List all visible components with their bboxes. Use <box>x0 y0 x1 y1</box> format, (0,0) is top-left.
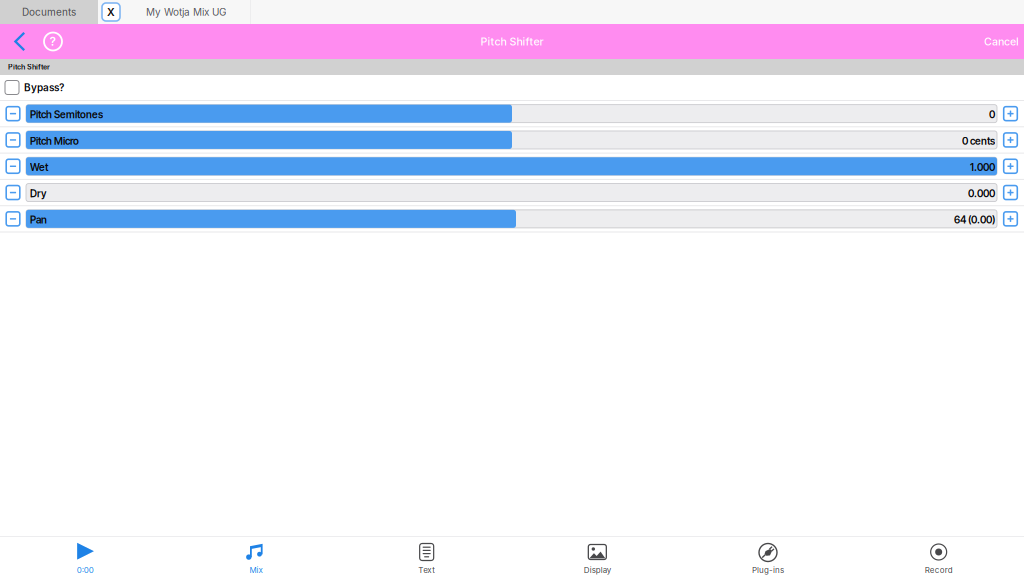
button[interactable]: Decrease Dry <box>0 180 26 205</box>
button[interactable]: Decrease Pan <box>0 206 26 231</box>
button[interactable]: Pan <box>26 206 997 231</box>
button[interactable]: Decrease Pitch Semitones <box>0 101 26 126</box>
button[interactable]: Decrease Pitch Micro <box>0 127 26 153</box>
staticText: Plug-ins <box>752 565 784 575</box>
staticText: My Wotja Mix UG <box>146 6 226 18</box>
button[interactable]: Increase Pitch Semitones <box>997 101 1024 126</box>
button[interactable]: Back <box>7 26 35 57</box>
button[interactable]: Mix <box>171 537 341 576</box>
staticText: X <box>107 5 115 18</box>
button[interactable]: Documents <box>0 0 98 24</box>
staticText: Documents <box>22 6 76 18</box>
button[interactable]: Wet <box>26 154 997 179</box>
button[interactable]: Text <box>341 537 512 576</box>
button[interactable]: Increase Pan <box>997 206 1024 231</box>
button[interactable]: 0:00 <box>0 537 171 576</box>
staticText: Pitch Micro <box>30 135 79 147</box>
button[interactable]: Help <box>35 26 69 57</box>
staticText: Bypass? <box>24 81 64 94</box>
staticText: 0 cents <box>962 135 995 147</box>
staticText: Pitch Semitones <box>30 108 103 121</box>
staticText: Display <box>584 565 611 575</box>
button[interactable]: Plug-ins <box>683 537 853 576</box>
button[interactable]: Dry <box>26 180 997 205</box>
button[interactable]: Record <box>853 537 1024 576</box>
staticText: Pitch Shifter <box>8 63 50 71</box>
button[interactable]: Pitch Semitones <box>26 101 997 126</box>
button[interactable]: Increase Wet <box>997 154 1024 179</box>
staticText: Wet <box>30 161 48 173</box>
staticText: Dry <box>30 187 46 200</box>
button[interactable]: Bypass? <box>0 75 1024 101</box>
staticText: Pan <box>30 214 47 226</box>
button[interactable]: Cancel <box>984 24 1024 59</box>
staticText: Cancel <box>984 35 1019 48</box>
staticText: 0:00 <box>77 565 94 575</box>
button[interactable]: Increase Dry <box>997 180 1024 205</box>
staticText: 0.000 <box>968 187 995 200</box>
staticText: Mix <box>249 565 262 575</box>
staticText: ? <box>49 34 56 49</box>
button[interactable]: Increase Pitch Micro <box>997 127 1024 153</box>
button[interactable]: X <box>98 0 250 24</box>
staticText: Text <box>418 565 435 575</box>
staticText: Record <box>925 565 953 575</box>
staticText: Pitch Shifter <box>480 35 543 48</box>
staticText: 64 (0.00) <box>954 214 995 226</box>
button[interactable]: Pitch Micro <box>26 127 997 153</box>
button[interactable]: Display <box>512 537 683 576</box>
staticText: 0 <box>989 108 995 121</box>
staticText: 1.000 <box>970 161 995 173</box>
button[interactable]: Decrease Wet <box>0 154 26 179</box>
